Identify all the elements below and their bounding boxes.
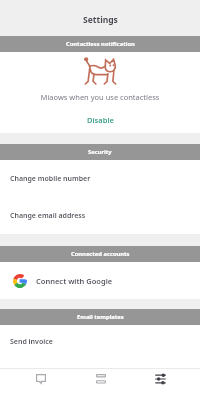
button[interactable]: Send invoice — [0, 325, 200, 359]
staticText: Change email address — [10, 211, 86, 221]
staticText: Disable — [87, 115, 114, 125]
button[interactable]: Settings — [132, 369, 188, 400]
staticText: Contactless notification — [66, 40, 135, 48]
staticText: Email templates — [77, 313, 124, 321]
staticText: Settings — [83, 14, 118, 26]
button[interactable]: Connect with Google — [0, 262, 200, 299]
button[interactable]: Change mobile number — [0, 160, 200, 197]
staticText: Send invoice — [10, 337, 53, 347]
staticText: Miaows when you use contactless — [0, 92, 200, 102]
staticText: Connected accounts — [71, 250, 130, 258]
button[interactable]: Disable — [0, 113, 200, 127]
button[interactable]: Cards — [72, 369, 128, 400]
staticText: Connect with Google — [36, 276, 113, 286]
staticText: Security — [88, 148, 112, 156]
button[interactable]: Messages — [12, 369, 68, 400]
button[interactable]: Change email address — [0, 197, 200, 234]
staticText: Change mobile number — [10, 174, 91, 184]
